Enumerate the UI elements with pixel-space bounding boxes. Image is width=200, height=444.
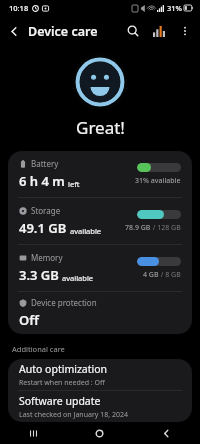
staticText: 31% [167,3,182,13]
button[interactable]: Battery [8,151,192,197]
staticText: 10:18 [9,3,29,13]
staticText: Storage [31,205,61,216]
staticText: 31% available [135,176,181,186]
staticText: 6 h 4 m [19,172,65,190]
staticText: Off [19,311,39,329]
staticText: 78.9 GB [125,223,151,233]
button[interactable]: Device protection [8,292,192,334]
staticText: Additional care [12,344,65,354]
staticText: available [62,273,94,283]
staticText: Software update [19,394,101,408]
staticText: 4 GB [143,270,159,280]
staticText: / 128 GB [151,223,181,233]
staticText: Battery [31,158,59,169]
button[interactable]: Memory [8,245,192,291]
button[interactable]: Usage statistics [146,18,172,44]
staticText: Device care [28,23,98,40]
staticText: Last checked on January 18, 2024 [19,410,128,420]
button[interactable]: Search [120,18,146,44]
button[interactable]: Back [0,17,28,45]
button[interactable]: Back [133,422,200,444]
staticText: Auto optimization [19,362,108,376]
staticText: Great! [76,116,125,139]
button[interactable]: Home [66,422,133,444]
button[interactable]: Auto optimization [8,359,192,390]
staticText: Device protection [31,297,97,308]
staticText: Restart when needed : Off [19,378,105,388]
staticText: available [70,226,102,236]
button[interactable]: Software update [8,391,192,422]
staticText: 49.1 GB [19,219,67,237]
button[interactable]: Storage [8,198,192,244]
staticText: left [68,179,80,189]
staticText: Memory [31,252,63,263]
button[interactable]: More options [172,18,198,44]
staticText: 3.3 GB [19,266,59,284]
button[interactable]: Recent apps [0,422,66,444]
staticText: / 8 GB [159,270,181,280]
